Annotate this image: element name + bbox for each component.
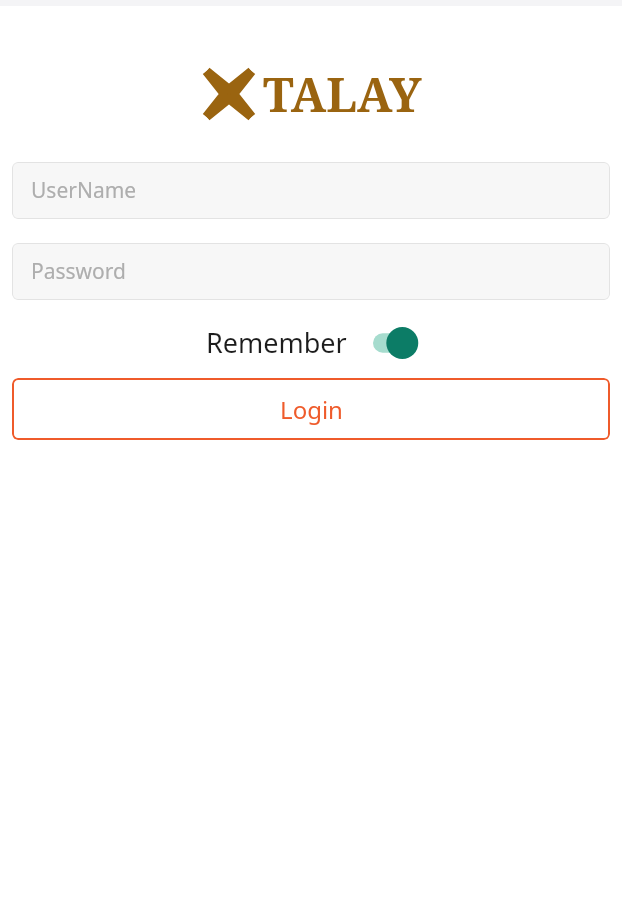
staticText: TALAY — [263, 62, 422, 126]
staticText: Login — [280, 393, 343, 426]
button[interactable]: Remember me toggle, on — [373, 326, 417, 360]
other: Talay logo — [201, 66, 257, 122]
staticText: Password — [31, 257, 126, 286]
button[interactable]: Remember — [202, 322, 421, 363]
staticText: UserName — [31, 176, 137, 205]
staticText: Remember — [206, 324, 347, 361]
button[interactable]: Login — [12, 378, 610, 440]
button[interactable]: Password — [12, 243, 610, 300]
button[interactable]: UserName — [12, 162, 610, 219]
